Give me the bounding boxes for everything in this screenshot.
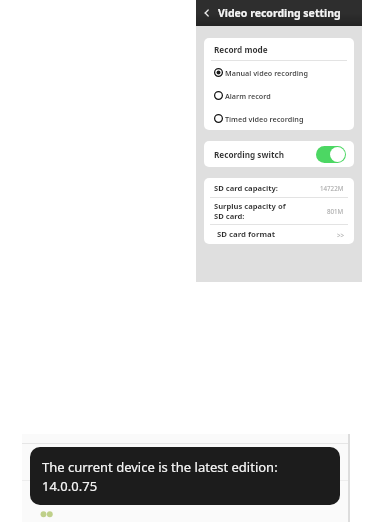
staticText: Surplus capacity of — [214, 201, 286, 211]
staticText: SD card format — [217, 229, 276, 240]
staticText: Record mode — [214, 44, 268, 55]
button[interactable]: SD card capacity: — [204, 178, 354, 197]
staticText: SD card capacity: — [214, 183, 278, 193]
staticText: SD card: — [214, 211, 245, 221]
staticText: The current device is the latest edition… — [42, 458, 278, 495]
other: Recording switch on — [316, 146, 346, 163]
button[interactable]: Alarm record — [204, 84, 354, 107]
staticText: Alarm record — [225, 91, 271, 101]
button[interactable]: The current device is the latest edition… — [30, 447, 340, 505]
staticText: Manual video recording — [225, 68, 308, 78]
staticText: 801M — [327, 207, 344, 215]
button[interactable]: Manual video recording — [204, 61, 354, 84]
button[interactable]: Timed video recording — [204, 107, 354, 130]
staticText: Timed video recording — [225, 114, 304, 124]
staticText: >> — [337, 231, 345, 239]
button[interactable]: Back — [196, 0, 218, 26]
button[interactable]: Recording switch — [204, 141, 354, 167]
staticText: Recording switch — [214, 149, 285, 160]
staticText: Video recording setting — [218, 6, 341, 20]
button[interactable]: SD card format — [204, 225, 354, 244]
button[interactable]: Surplus capacity of — [204, 198, 354, 224]
staticText: 14722M — [320, 184, 344, 192]
